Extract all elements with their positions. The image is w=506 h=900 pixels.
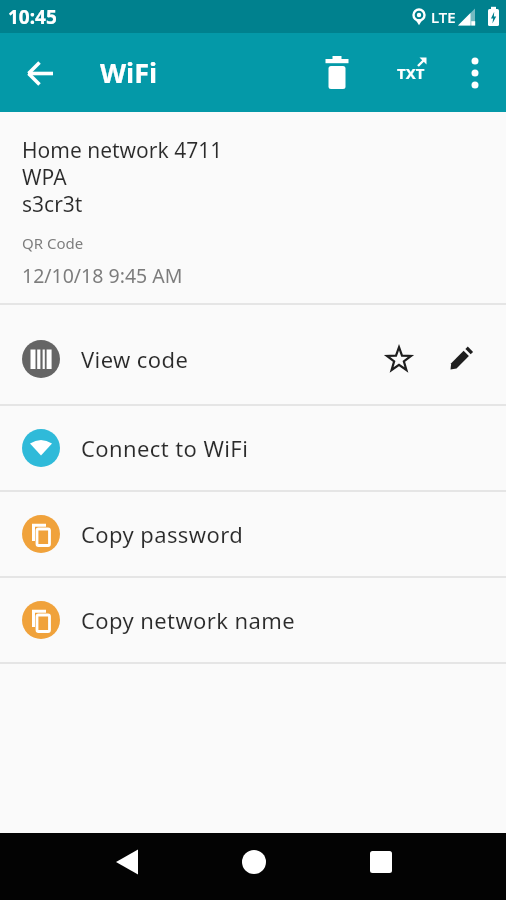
staticText: Connect to WiFi — [81, 433, 249, 463]
staticText: View code — [81, 344, 189, 374]
staticText: Copy network name — [81, 605, 296, 635]
button[interactable]: Copy network name — [0, 578, 506, 662]
button[interactable] — [375, 335, 423, 383]
button[interactable] — [317, 833, 444, 891]
button[interactable] — [437, 335, 485, 383]
button[interactable] — [63, 833, 190, 891]
staticText: QR Code — [22, 233, 84, 253]
staticText: TXT — [397, 63, 425, 83]
button[interactable]: Copy password — [0, 492, 506, 576]
staticText: 12/10/18 9:45 AM — [22, 262, 183, 289]
staticText: WiFi — [100, 54, 158, 91]
button[interactable]: View code — [0, 305, 506, 404]
button[interactable] — [449, 47, 501, 99]
staticText: Copy password — [81, 519, 244, 549]
staticText: Home network 4711 WPA s3cr3t — [22, 136, 223, 218]
button[interactable] — [12, 45, 68, 101]
staticText: LTE — [431, 7, 456, 27]
button[interactable]: TXT — [385, 47, 437, 99]
button[interactable] — [190, 833, 317, 891]
button[interactable] — [311, 47, 363, 99]
button[interactable]: Connect to WiFi — [0, 406, 506, 490]
staticText: 10:45 — [8, 4, 57, 30]
